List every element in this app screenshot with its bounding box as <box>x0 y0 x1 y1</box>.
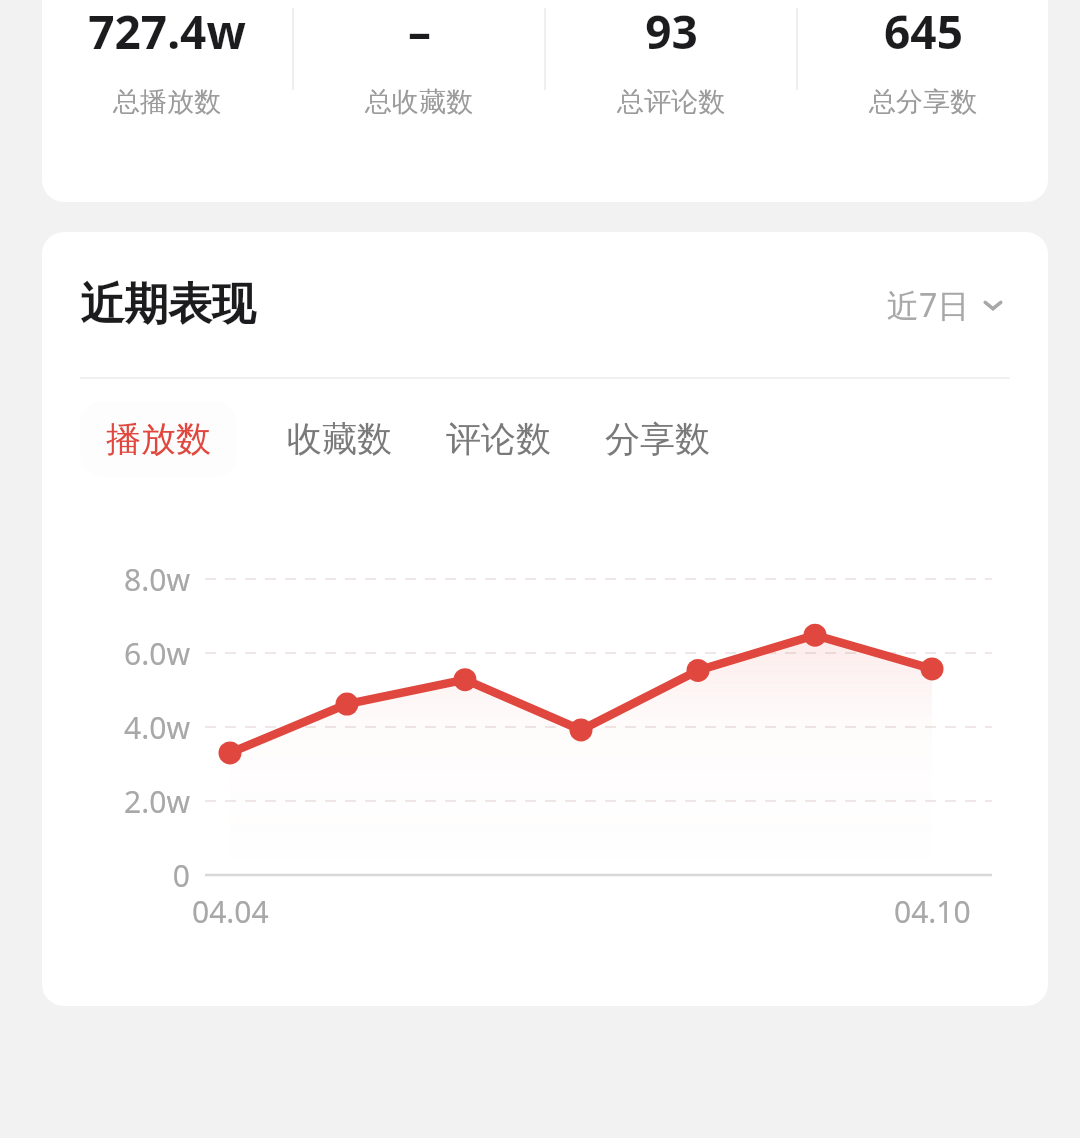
staticText: 总评论数 <box>617 85 725 119</box>
staticText: 分享数 <box>605 417 710 461</box>
button[interactable]: 收藏数 <box>283 401 396 477</box>
button[interactable]: 评论数 <box>442 401 555 477</box>
staticText: 总播放数 <box>113 85 221 119</box>
staticText: – <box>408 0 431 63</box>
staticText: 总收藏数 <box>365 85 473 119</box>
staticText: 播放数 <box>106 417 211 461</box>
staticText: 2.0w <box>124 781 190 822</box>
staticText: 0 <box>172 855 190 896</box>
button[interactable]: 645 <box>798 0 1048 119</box>
staticText: 近7日 <box>887 283 970 327</box>
button[interactable]: – <box>294 0 544 119</box>
button[interactable]: 分享数 <box>601 401 714 477</box>
staticText: 8.0w <box>124 559 190 600</box>
staticText: 评论数 <box>446 417 551 461</box>
staticText: 收藏数 <box>287 417 392 461</box>
staticText: 总分享数 <box>869 85 977 119</box>
staticText: 645 <box>884 0 963 63</box>
staticText: 93 <box>645 0 698 63</box>
staticText: 04.04 <box>192 891 269 932</box>
staticText: 近期表现 <box>80 277 256 332</box>
button[interactable]: 727.4w <box>42 0 292 119</box>
button[interactable]: 近7日 <box>883 277 1010 333</box>
button[interactable]: 播放数 <box>80 401 237 477</box>
button[interactable]: 93 <box>546 0 796 119</box>
staticText: 4.0w <box>124 707 190 748</box>
staticText: 6.0w <box>124 633 190 674</box>
staticText: 04.10 <box>894 891 971 932</box>
staticText: 727.4w <box>88 0 246 63</box>
